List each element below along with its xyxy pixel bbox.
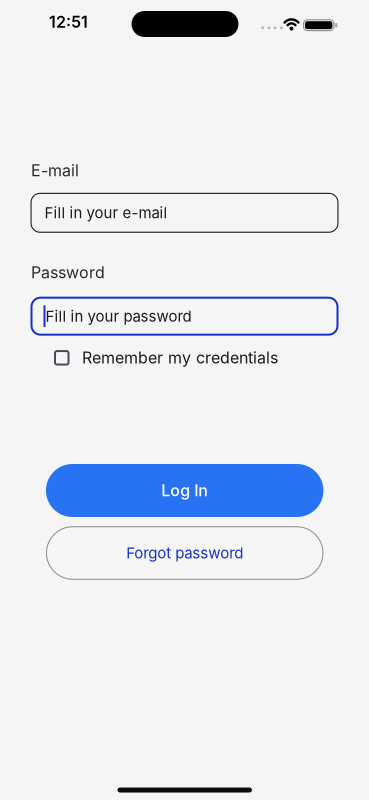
staticText: Log In	[161, 481, 208, 500]
button[interactable]: Remember my credentials	[54, 346, 369, 370]
staticText: 12:51	[49, 12, 88, 32]
button[interactable]: Fill in your e-mail	[30, 193, 338, 233]
button[interactable]: Forgot password	[46, 526, 323, 580]
staticText: Forgot password	[126, 544, 243, 562]
staticText: E-mail	[31, 161, 79, 180]
staticText: Fill in your e-mail	[44, 204, 167, 222]
staticText: Password	[31, 263, 105, 282]
staticText: Remember my credentials	[82, 348, 278, 367]
button[interactable]: Fill in your password	[30, 297, 338, 336]
button[interactable]: Log In	[46, 464, 323, 517]
staticText: Fill in your password	[45, 307, 191, 325]
